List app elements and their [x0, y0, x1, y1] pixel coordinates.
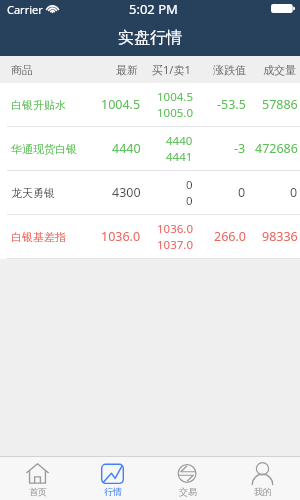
staticText: -53.5 [217, 96, 246, 113]
button[interactable]: 白银基差指 [0, 215, 300, 259]
staticText: 57886 [262, 96, 298, 113]
staticText: 0 [290, 184, 298, 201]
staticText: 1004.5 [101, 96, 141, 113]
staticText: 涨跌值 [213, 63, 246, 77]
staticText: 472686 [255, 140, 298, 157]
staticText: 白银基差指 [11, 230, 66, 244]
button[interactable]: 交易 [150, 457, 225, 500]
staticText: 1004.5 [157, 89, 193, 105]
staticText: 4440 [166, 133, 193, 149]
button[interactable]: 白银升贴水 [0, 83, 300, 127]
staticText: Carrier [7, 2, 43, 17]
staticText: 98336 [262, 228, 298, 245]
staticText: 实盘行情 [118, 28, 182, 48]
button[interactable]: 龙天勇银 [0, 171, 300, 215]
button[interactable]: 华通现货白银 [0, 127, 300, 171]
button[interactable]: 我的 [225, 457, 300, 500]
staticText: 1036.0 [101, 228, 141, 245]
staticText: 白银升贴水 [11, 98, 66, 112]
staticText: 1005.0 [157, 105, 193, 121]
staticText: -3 [234, 140, 246, 157]
staticText: 商品 [11, 63, 33, 77]
button[interactable]: 首页 [0, 457, 75, 500]
staticText: 4300 [112, 184, 141, 201]
staticText: 成交量 [263, 63, 296, 77]
staticText: 买1/卖1 [152, 62, 191, 77]
staticText: 龙天勇银 [11, 186, 55, 200]
staticText: 华通现货白银 [11, 142, 77, 156]
staticText: 1036.0 [157, 221, 193, 237]
staticText: 0 [238, 184, 246, 201]
staticText: 5:02 PM [129, 0, 178, 18]
staticText: 我的 [254, 486, 272, 497]
staticText: 0 [186, 177, 193, 193]
staticText: 交易 [179, 486, 197, 497]
staticText: 4441 [166, 149, 193, 165]
button[interactable]: 行情 [75, 457, 150, 500]
staticText: 1037.0 [157, 237, 193, 253]
staticText: 最新 [116, 63, 138, 77]
staticText: 4440 [112, 140, 141, 157]
staticText: 0 [186, 193, 193, 209]
staticText: 首页 [29, 486, 47, 497]
staticText: 行情 [104, 486, 122, 497]
staticText: 266.0 [214, 228, 246, 245]
